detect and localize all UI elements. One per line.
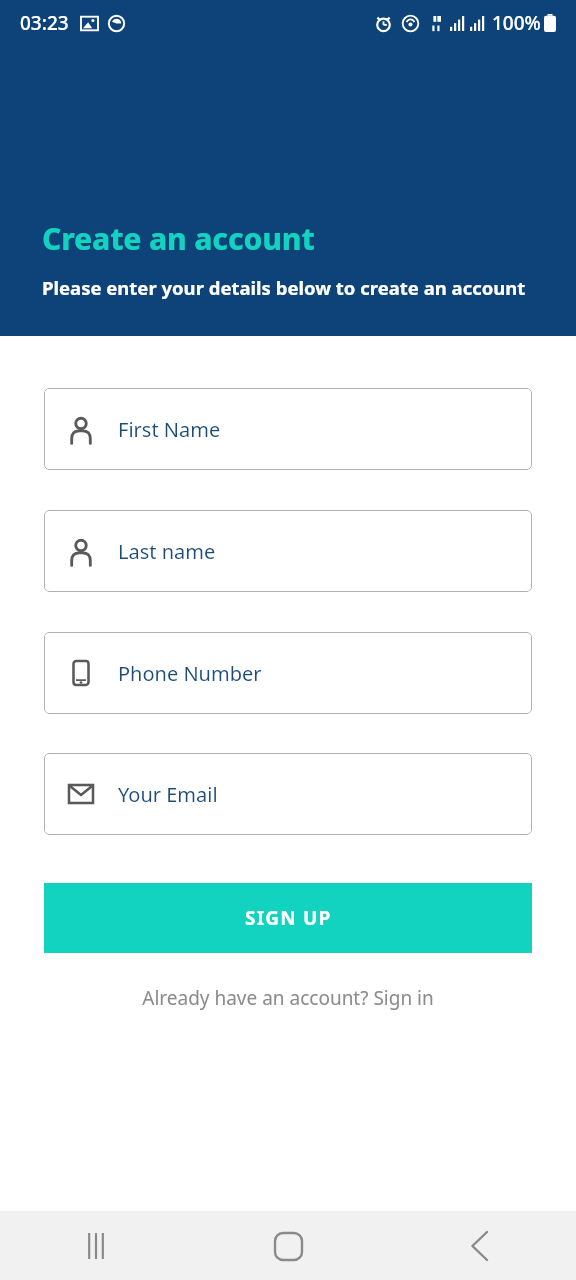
staticText: Last name xyxy=(118,538,216,565)
button[interactable]: Recents xyxy=(63,1213,129,1279)
staticText: Please enter your details below to creat… xyxy=(42,275,526,300)
button[interactable]: Back xyxy=(447,1213,513,1279)
staticText: Your Email xyxy=(118,781,218,808)
staticText: 100% xyxy=(492,10,541,36)
button[interactable]: First Name xyxy=(44,388,532,470)
button[interactable]: Home xyxy=(255,1213,321,1279)
staticText: SIGN UP xyxy=(245,905,332,931)
staticText: Phone Number xyxy=(118,660,262,687)
button[interactable]: Phone Number xyxy=(44,632,532,714)
staticText: Create an account xyxy=(42,218,315,259)
staticText: First Name xyxy=(118,416,221,443)
button[interactable]: Your Email xyxy=(44,753,532,835)
staticText: Already have an account? Sign in xyxy=(142,985,434,1011)
button[interactable]: Last name xyxy=(44,510,532,592)
staticText: 03:23 xyxy=(20,10,69,36)
button[interactable]: Already have an account? Sign in xyxy=(44,979,532,1017)
button[interactable]: SIGN UP xyxy=(44,883,532,953)
